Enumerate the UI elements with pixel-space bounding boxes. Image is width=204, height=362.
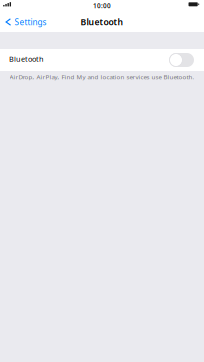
staticText: Settings [15, 16, 47, 27]
staticText: AirDrop, AirPlay, Find My and location s… [9, 73, 194, 81]
button[interactable]: Bluetooth [0, 49, 204, 71]
staticText: Bluetooth [9, 54, 44, 64]
staticText: Bluetooth [80, 16, 123, 28]
staticText: 10:00 [93, 2, 111, 10]
button[interactable]: Settings [0, 12, 52, 32]
